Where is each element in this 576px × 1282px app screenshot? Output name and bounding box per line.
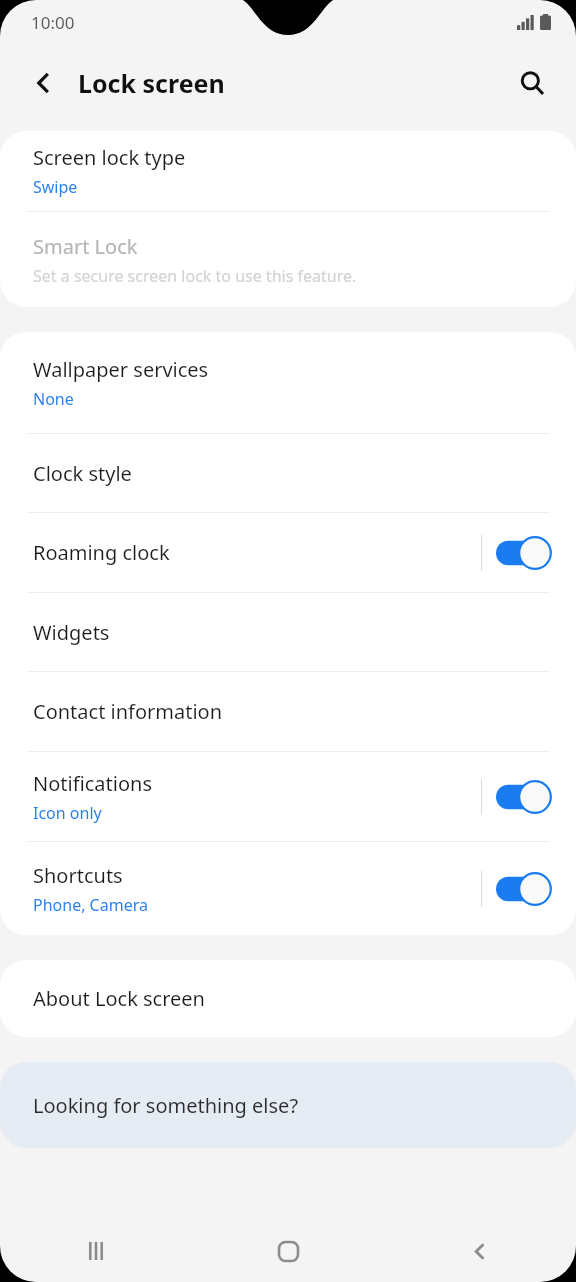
button[interactable]: Screen lock type [0,131,576,211]
staticText: Looking for something else? [33,1092,299,1119]
button[interactable]: Notifications [0,752,576,841]
staticText: Shortcuts [33,862,123,889]
button[interactable]: Toggle Shortcuts [496,872,552,906]
button[interactable]: About Lock screen [0,960,576,1037]
button[interactable]: Wallpaper services [0,332,576,433]
staticText: Widgets [33,619,110,646]
staticText: Screen lock type [33,144,186,171]
button[interactable]: Smart Lock [0,212,576,307]
button[interactable]: Search [508,59,556,107]
staticText: Set a secure screen lock to use this fea… [33,265,357,287]
staticText: Icon only [33,802,102,824]
button[interactable]: Back [20,59,68,107]
staticText: Notifications [33,770,152,797]
button[interactable]: Back [384,1220,576,1282]
staticText: Swipe [33,176,78,198]
staticText: Roaming clock [33,539,170,566]
button[interactable]: Recents [0,1220,192,1282]
staticText: None [33,388,74,410]
button[interactable]: Home [192,1220,384,1282]
staticText: About Lock screen [33,985,205,1012]
button[interactable]: Clock style [0,434,576,512]
button[interactable]: Looking for something else? [0,1062,576,1148]
button[interactable]: Contact information [0,672,576,751]
staticText: 10:00 [31,11,75,34]
staticText: Smart Lock [33,233,138,260]
button[interactable]: Toggle Roaming clock [496,536,552,570]
staticText: Contact information [33,698,223,725]
staticText: Lock screen [78,66,225,100]
staticText: Phone, Camera [33,894,148,916]
button[interactable]: Shortcuts [0,842,576,935]
button[interactable]: Widgets [0,593,576,671]
staticText: Clock style [33,460,132,487]
button[interactable]: Toggle Notifications [496,780,552,814]
button[interactable]: Roaming clock [0,513,576,592]
staticText: Wallpaper services [33,356,209,383]
